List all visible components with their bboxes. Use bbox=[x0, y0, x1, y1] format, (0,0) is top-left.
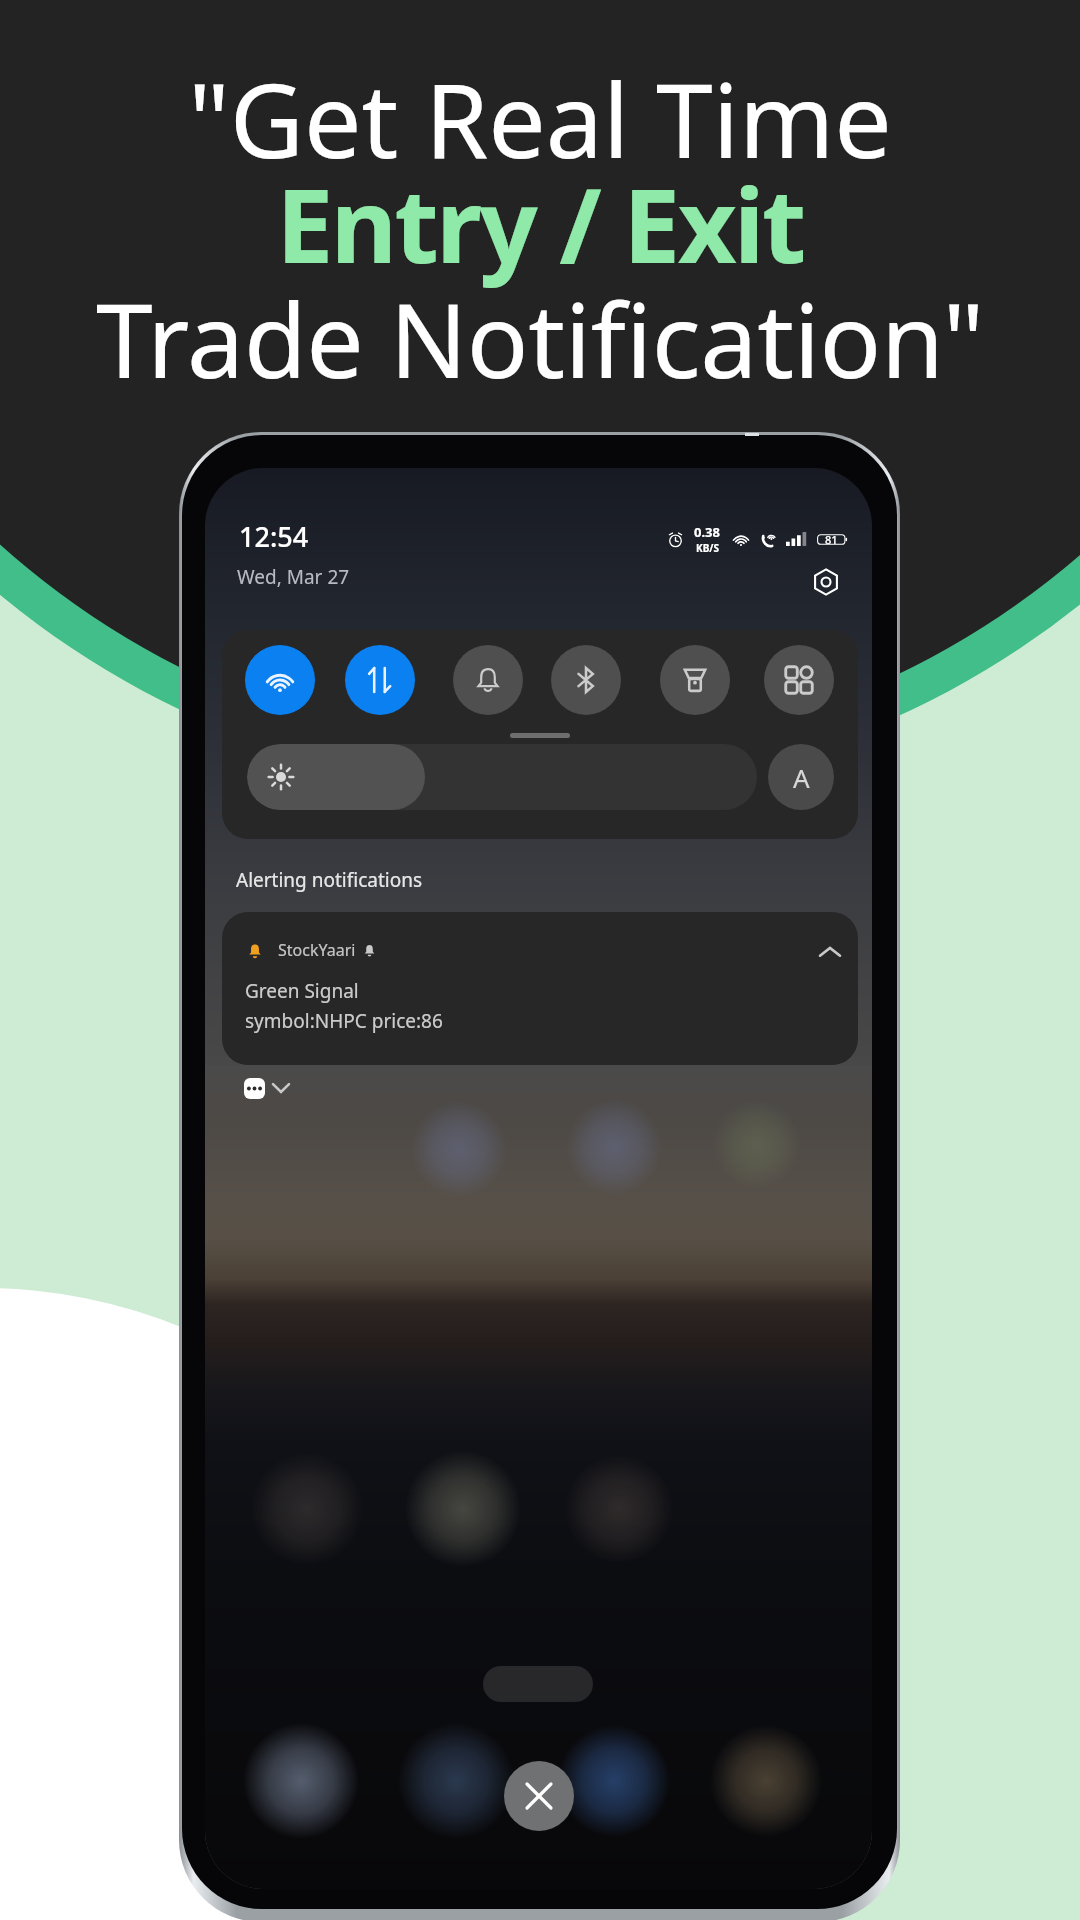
staticText: A bbox=[793, 760, 810, 795]
staticText: Trade Notification" bbox=[0, 269, 1080, 408]
staticText: KB/S bbox=[696, 541, 719, 555]
staticText: "Get Real Time bbox=[0, 49, 1080, 188]
button[interactable]: Wi-Fi bbox=[245, 645, 315, 715]
button[interactable]: Close bbox=[504, 1761, 574, 1831]
staticText: 0.38 bbox=[694, 523, 720, 541]
button[interactable]: Bluetooth bbox=[551, 645, 621, 715]
button[interactable]: Silent bbox=[453, 645, 523, 715]
button[interactable]: More tiles bbox=[764, 645, 834, 715]
button[interactable]: StockYaari bbox=[222, 912, 858, 1065]
staticText: symbol:NHPC price:86 bbox=[245, 1008, 443, 1034]
staticText: Wed, Mar 27 bbox=[237, 564, 350, 590]
button[interactable]: Flashlight bbox=[660, 645, 730, 715]
button[interactable]: Brightness bbox=[247, 744, 757, 810]
staticText: 81 bbox=[825, 532, 838, 547]
button[interactable]: A bbox=[768, 744, 834, 810]
staticText: Alerting notifications bbox=[236, 867, 423, 893]
button[interactable]: More options bbox=[244, 1078, 265, 1099]
button[interactable]: Settings bbox=[811, 567, 841, 597]
staticText: Green Signal bbox=[245, 978, 359, 1004]
staticText: StockYaari bbox=[278, 939, 356, 961]
staticText: Entry / Exit bbox=[0, 154, 1080, 293]
button[interactable]: Mobile data bbox=[345, 645, 415, 715]
staticText: 12:54 bbox=[239, 518, 309, 555]
